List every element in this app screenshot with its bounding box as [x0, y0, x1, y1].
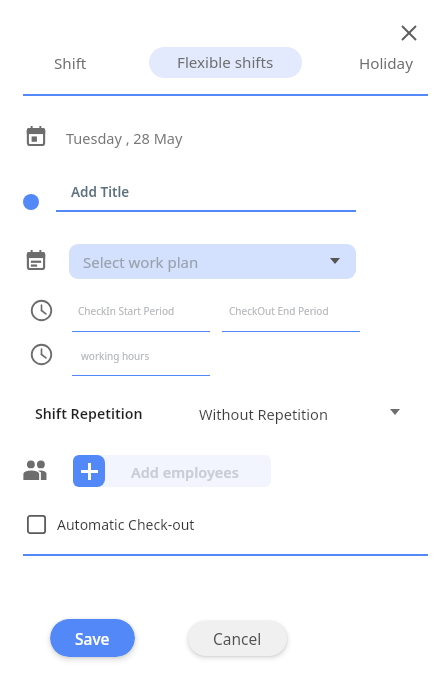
- staticText: Save: [75, 628, 110, 649]
- staticText: Without Repetition: [199, 404, 328, 424]
- staticText: Shift Repetition: [35, 404, 143, 423]
- button[interactable]: CheckIn Start Period: [72, 300, 210, 333]
- button[interactable]: Add employees: [73, 455, 271, 487]
- staticText: Flexible shifts: [177, 52, 274, 73]
- staticText: Tuesday , 28 May: [66, 128, 183, 148]
- button[interactable]: Flexible shifts: [149, 47, 302, 78]
- button[interactable]: Shift: [25, 48, 115, 79]
- staticText: Holiday: [359, 53, 413, 74]
- button[interactable]: CheckOut End Period: [222, 300, 360, 333]
- button[interactable]: Automatic Check-out: [27, 510, 195, 538]
- staticText: Automatic Check-out: [57, 515, 195, 534]
- button[interactable]: Tuesday , 28 May: [20, 118, 260, 156]
- staticText: Select work plan: [83, 252, 199, 272]
- button[interactable]: Add Title: [56, 178, 356, 211]
- staticText: Add employees: [131, 462, 239, 482]
- button[interactable]: Holiday: [341, 48, 431, 79]
- staticText: Shift: [54, 53, 87, 74]
- staticText: Add Title: [71, 183, 130, 201]
- button[interactable]: Without Repetition: [199, 398, 414, 428]
- button[interactable]: Cancel: [188, 621, 287, 656]
- button[interactable]: Save: [50, 619, 135, 657]
- button[interactable]: Close: [391, 15, 427, 51]
- button[interactable]: Select work plan: [69, 244, 356, 279]
- staticText: CheckOut End Period: [229, 304, 329, 318]
- button[interactable]: working hours: [72, 344, 210, 377]
- staticText: Cancel: [213, 628, 262, 649]
- staticText: working hours: [81, 349, 150, 363]
- staticText: CheckIn Start Period: [78, 304, 175, 318]
